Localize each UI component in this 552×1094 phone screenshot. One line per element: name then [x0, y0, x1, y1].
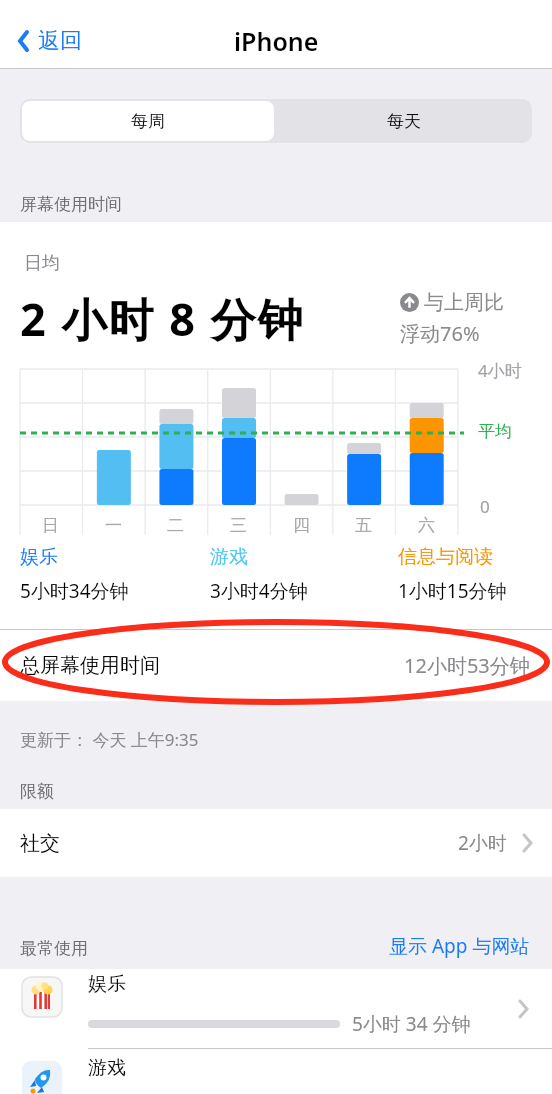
- staticText: 与上周比: [424, 290, 504, 315]
- staticText: 三: [230, 515, 247, 536]
- staticText: 日: [42, 515, 59, 536]
- button[interactable]: 总屏幕使用时间: [0, 630, 552, 701]
- button[interactable]: 返回: [16, 27, 82, 55]
- staticText: 最常使用: [20, 938, 88, 959]
- staticText: 限额: [20, 781, 54, 802]
- staticText: 5小时 34 分钟: [352, 1011, 471, 1037]
- staticText: 显示 App 与网站: [389, 933, 530, 959]
- staticText: 12小时53分钟: [404, 652, 530, 679]
- button[interactable]: 每天: [276, 99, 532, 143]
- staticText: 返回: [38, 27, 82, 55]
- staticText: 四: [293, 515, 310, 536]
- staticText: 娱乐: [88, 972, 126, 996]
- button[interactable]: 社交: [0, 809, 552, 877]
- staticText: 5小时34分钟: [20, 578, 129, 604]
- staticText: 更新于： 今天 上午9:35: [20, 728, 199, 751]
- button[interactable]: 游戏: [0, 1049, 552, 1094]
- staticText: 二: [167, 515, 184, 536]
- staticText: 浮动76%: [400, 320, 480, 347]
- staticText: 每周: [131, 111, 165, 132]
- staticText: 娱乐: [20, 545, 58, 569]
- staticText: 游戏: [88, 1056, 126, 1080]
- staticText: 2小时: [458, 830, 507, 856]
- staticText: 3小时4分钟: [210, 578, 308, 604]
- staticText: 0: [480, 495, 490, 518]
- staticText: 信息与阅读: [398, 545, 493, 569]
- staticText: 日均: [24, 252, 60, 275]
- staticText: 六: [418, 515, 435, 536]
- staticText: iPhone: [234, 24, 319, 58]
- staticText: 五: [355, 515, 372, 536]
- staticText: 游戏: [210, 545, 248, 569]
- button[interactable]: 每周: [22, 101, 274, 141]
- staticText: 总屏幕使用时间: [20, 653, 160, 678]
- staticText: 社交: [20, 831, 60, 856]
- staticText: 1小时15分钟: [398, 578, 507, 604]
- button[interactable]: 娱乐: [0, 969, 552, 1048]
- staticText: 一: [105, 515, 122, 536]
- button[interactable]: 显示 App 与网站: [389, 933, 530, 959]
- staticText: 屏幕使用时间: [20, 194, 122, 215]
- staticText: 每天: [387, 111, 421, 132]
- staticText: 4小时: [478, 359, 522, 382]
- staticText: 平均: [478, 421, 512, 442]
- staticText: 2 小时 8 分钟: [20, 288, 305, 349]
